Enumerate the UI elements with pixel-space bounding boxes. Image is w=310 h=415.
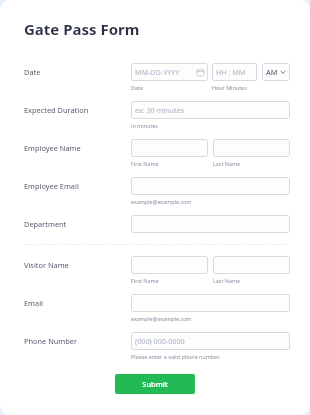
button[interactable]: Employee email	[131, 177, 290, 195]
button[interactable]: Employee first name	[131, 139, 208, 157]
staticText: in minutes	[131, 122, 158, 129]
button[interactable]: HH : MM	[212, 63, 257, 81]
staticText: Expected Duration	[24, 105, 89, 115]
staticText: Date	[24, 67, 41, 77]
button[interactable]: Pick date	[131, 63, 208, 81]
staticText: Visitor Name	[24, 260, 69, 270]
staticText: Department	[24, 219, 67, 229]
staticText: Gate Pass Form	[24, 19, 140, 39]
staticText: Email	[24, 298, 43, 308]
staticText: MM-DD-YYYY	[135, 67, 180, 77]
button[interactable]: ex: 30 minutes	[131, 101, 290, 119]
button[interactable]: Visitor email	[131, 294, 290, 312]
button[interactable]: Visitor first name	[131, 256, 208, 274]
staticText: example@example.com	[131, 198, 192, 205]
staticText: Hour Minutes	[212, 84, 247, 91]
staticText: Phone Number	[24, 336, 78, 346]
staticText: example@example.com	[131, 315, 192, 322]
staticText: HH : MM	[216, 67, 246, 77]
button[interactable]: Employee last name	[213, 139, 290, 157]
staticText: Submit	[142, 379, 168, 389]
staticText: Employee Email	[24, 181, 79, 191]
button[interactable]: Visitor last name	[213, 256, 290, 274]
staticText: ex: 30 minutes	[135, 105, 185, 115]
button[interactable]: (000) 000-0000	[131, 332, 290, 350]
staticText: Last Name	[213, 160, 240, 167]
button[interactable]: Department	[131, 215, 290, 233]
staticText: First Name	[131, 277, 159, 284]
staticText: Date	[131, 84, 143, 91]
staticText: Please enter a valid phone number.	[131, 353, 220, 360]
staticText: AM	[266, 67, 278, 77]
staticText: Employee Name	[24, 143, 81, 153]
staticText: First Name	[131, 160, 159, 167]
button[interactable]: AM or PM	[262, 63, 290, 81]
button[interactable]: Submit	[115, 374, 195, 394]
staticText: (000) 000-0000	[135, 336, 185, 346]
staticText: Last Name	[213, 277, 240, 284]
